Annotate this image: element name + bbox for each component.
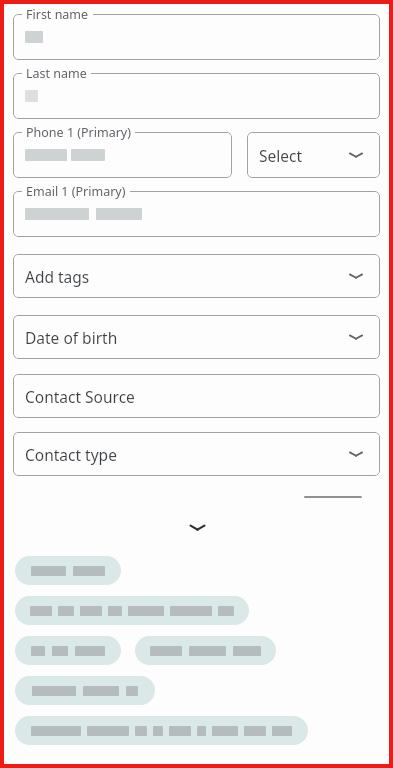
button[interactable] — [13, 132, 232, 178]
staticText: Add tags — [25, 266, 90, 287]
staticText: Last name — [26, 65, 87, 82]
button[interactable]: More — [304, 496, 362, 498]
staticText: Date of birth — [25, 327, 118, 348]
button[interactable]: Contact type — [13, 432, 380, 476]
button[interactable]: Contact Source — [13, 374, 380, 418]
button[interactable]: Select — [247, 132, 380, 178]
button[interactable] — [13, 73, 380, 119]
button[interactable]: Add tags — [13, 254, 380, 298]
button[interactable] — [135, 636, 276, 665]
staticText: Email 1 (Primary) — [26, 183, 126, 200]
button[interactable] — [13, 14, 380, 60]
staticText: Select — [259, 145, 303, 166]
button[interactable] — [15, 676, 155, 705]
staticText: Phone 1 (Primary) — [26, 124, 131, 141]
staticText: Contact Source — [25, 386, 135, 407]
button[interactable]: Expand more — [180, 510, 214, 544]
staticText: First name — [26, 6, 89, 23]
button[interactable] — [15, 556, 121, 585]
button[interactable] — [15, 716, 308, 745]
button[interactable] — [13, 191, 380, 237]
staticText: Contact type — [25, 444, 117, 465]
button[interactable] — [15, 596, 249, 625]
button[interactable]: Date of birth — [13, 315, 380, 359]
button[interactable] — [15, 636, 121, 665]
